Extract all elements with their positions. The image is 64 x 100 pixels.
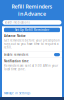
staticText: Enable reminders bbox=[4, 53, 28, 56]
staticText: Search medications bbox=[4, 21, 29, 24]
button[interactable]: Search medications bbox=[2, 20, 61, 25]
staticText: in Advance bbox=[18, 10, 46, 17]
button[interactable]: Enable reminders bbox=[2, 52, 62, 58]
button[interactable]: Set Up Refill Reminder bbox=[4, 28, 60, 32]
staticText: Refill Reminders bbox=[11, 3, 52, 10]
staticText: Set Up Refill Reminder bbox=[15, 28, 49, 32]
staticText: Manage in Settings bbox=[4, 91, 30, 95]
staticText: Reminders are sent at 9:00 AM in your lo… bbox=[4, 64, 58, 71]
staticText: Get reminders before your prescription r… bbox=[4, 39, 60, 49]
staticText: Advance Notice bbox=[4, 34, 26, 38]
staticText: Notification time bbox=[4, 59, 29, 63]
